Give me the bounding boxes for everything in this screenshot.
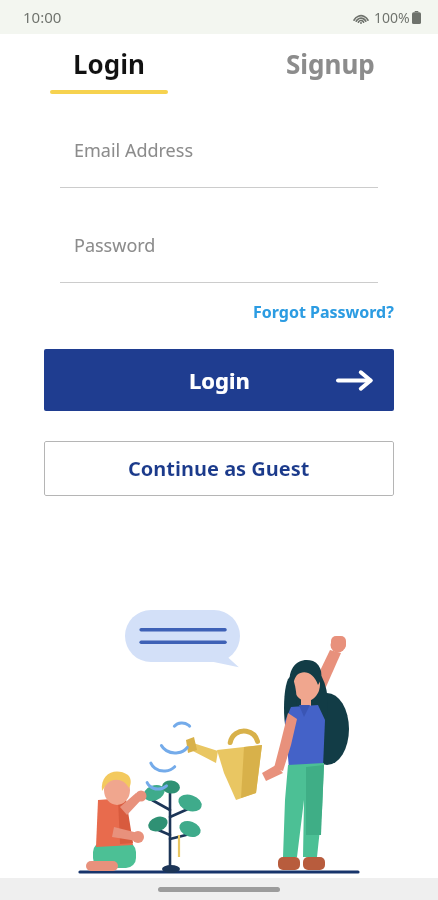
button[interactable]: Forgot Password?: [249, 297, 398, 327]
staticText: Continue as Guest: [128, 455, 310, 482]
button[interactable]: Continue as Guest: [44, 441, 394, 496]
staticText: Forgot Password?: [253, 301, 394, 323]
staticText: 10:00: [23, 7, 62, 27]
staticText: 100%: [374, 8, 410, 27]
button[interactable]: Login: [67, 44, 151, 83]
button[interactable]: Signup: [280, 44, 381, 83]
staticText: Signup: [286, 46, 375, 81]
button[interactable]: Password: [60, 233, 378, 283]
staticText: Password: [74, 233, 156, 258]
other: Login: [337, 368, 372, 393]
staticText: Login: [73, 46, 145, 81]
staticText: Login: [189, 365, 250, 395]
button[interactable]: Email Address: [60, 138, 378, 188]
button[interactable]: Login: [44, 349, 394, 411]
staticText: Email Address: [74, 138, 194, 163]
